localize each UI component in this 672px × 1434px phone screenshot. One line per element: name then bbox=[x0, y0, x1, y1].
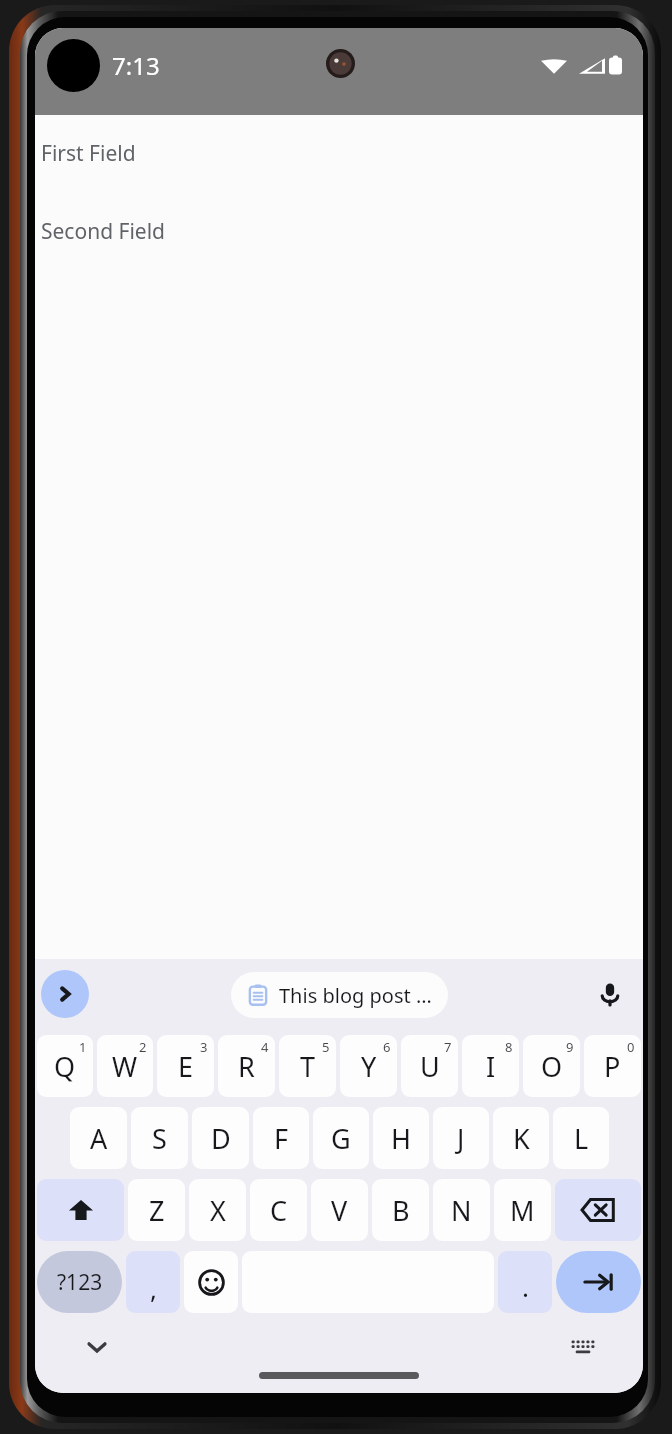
staticText: 1 bbox=[79, 1038, 87, 1056]
button[interactable]: W bbox=[97, 1035, 153, 1097]
staticText: D bbox=[211, 1120, 231, 1157]
staticText: N bbox=[451, 1192, 472, 1229]
staticText: This blog post … bbox=[279, 982, 432, 1009]
button[interactable]: O bbox=[523, 1035, 580, 1097]
staticText: K bbox=[513, 1120, 530, 1157]
staticText: Q bbox=[54, 1048, 76, 1085]
staticText: 5 bbox=[322, 1038, 330, 1056]
staticText: ?123 bbox=[57, 1268, 103, 1297]
button[interactable]: N bbox=[433, 1179, 490, 1241]
button[interactable]: R bbox=[218, 1035, 275, 1097]
staticText: 3 bbox=[200, 1038, 208, 1056]
button[interactable]: C bbox=[250, 1179, 307, 1241]
button[interactable]: G bbox=[313, 1107, 369, 1169]
button[interactable]: S bbox=[131, 1107, 188, 1169]
staticText: Second Field bbox=[41, 217, 166, 246]
staticText: 7 bbox=[444, 1038, 452, 1056]
staticText: . bbox=[522, 1269, 529, 1304]
button[interactable]: X bbox=[189, 1179, 246, 1241]
staticText: Y bbox=[361, 1048, 377, 1085]
staticText: J bbox=[457, 1120, 465, 1157]
staticText: 4 bbox=[261, 1038, 269, 1056]
button[interactable]: A bbox=[70, 1107, 127, 1169]
button[interactable]: Shift bbox=[37, 1179, 124, 1241]
button[interactable]: Change keyboard bbox=[561, 1325, 605, 1369]
staticText: A bbox=[90, 1120, 108, 1157]
button[interactable]: K bbox=[493, 1107, 549, 1169]
staticText: L bbox=[574, 1120, 589, 1157]
button[interactable]: Second Field bbox=[35, 211, 643, 251]
staticText: 0 bbox=[627, 1038, 635, 1056]
staticText: X bbox=[210, 1192, 226, 1229]
button[interactable]: Q bbox=[37, 1035, 93, 1097]
staticText: 8 bbox=[505, 1038, 513, 1056]
staticText: M bbox=[510, 1192, 535, 1229]
button[interactable]: ?123 bbox=[37, 1251, 122, 1313]
staticText: 2 bbox=[139, 1038, 147, 1056]
staticText: E bbox=[178, 1048, 194, 1085]
button[interactable]: Emoji bbox=[184, 1251, 238, 1313]
staticText: First Field bbox=[41, 139, 136, 168]
button[interactable]: Voice input bbox=[587, 971, 633, 1017]
staticText: 6 bbox=[383, 1038, 391, 1056]
button[interactable]: Expand suggestions bbox=[41, 970, 89, 1018]
button[interactable]: , bbox=[126, 1251, 180, 1313]
button[interactable]: Y bbox=[340, 1035, 397, 1097]
staticText: B bbox=[392, 1192, 410, 1229]
staticText: Z bbox=[149, 1192, 165, 1229]
button[interactable]: First Field bbox=[35, 133, 643, 173]
button[interactable]: P bbox=[584, 1035, 641, 1097]
staticText: O bbox=[541, 1048, 563, 1085]
staticText: P bbox=[604, 1048, 621, 1085]
staticText: V bbox=[331, 1192, 348, 1229]
button[interactable]: F bbox=[253, 1107, 309, 1169]
button[interactable]: Next field bbox=[556, 1251, 641, 1313]
button[interactable]: H bbox=[373, 1107, 429, 1169]
staticText: H bbox=[391, 1120, 412, 1157]
button[interactable]: I bbox=[462, 1035, 519, 1097]
button[interactable]: Backspace bbox=[555, 1179, 641, 1241]
button[interactable]: T bbox=[279, 1035, 336, 1097]
staticText: 9 bbox=[566, 1038, 574, 1056]
staticText: I bbox=[486, 1048, 496, 1085]
button[interactable]: B bbox=[372, 1179, 429, 1241]
button[interactable]: This blog post … bbox=[231, 972, 448, 1018]
staticText: U bbox=[420, 1048, 440, 1085]
staticText: , bbox=[150, 1271, 157, 1306]
button[interactable]: Hide keyboard bbox=[75, 1325, 119, 1369]
button[interactable]: E bbox=[157, 1035, 214, 1097]
staticText: G bbox=[331, 1120, 351, 1157]
staticText: C bbox=[270, 1192, 288, 1229]
button[interactable]: Z bbox=[128, 1179, 185, 1241]
button[interactable]: J bbox=[433, 1107, 489, 1169]
staticText: W bbox=[112, 1048, 138, 1085]
staticText: F bbox=[274, 1120, 289, 1157]
staticText: 7:13 bbox=[112, 49, 160, 82]
staticText: T bbox=[300, 1048, 316, 1085]
button[interactable]: U bbox=[401, 1035, 458, 1097]
button[interactable]: M bbox=[494, 1179, 551, 1241]
staticText: R bbox=[238, 1048, 255, 1085]
button[interactable]: . bbox=[498, 1251, 552, 1313]
button[interactable]: D bbox=[192, 1107, 249, 1169]
button[interactable]: V bbox=[311, 1179, 368, 1241]
staticText: S bbox=[152, 1120, 167, 1157]
button[interactable]: L bbox=[553, 1107, 609, 1169]
